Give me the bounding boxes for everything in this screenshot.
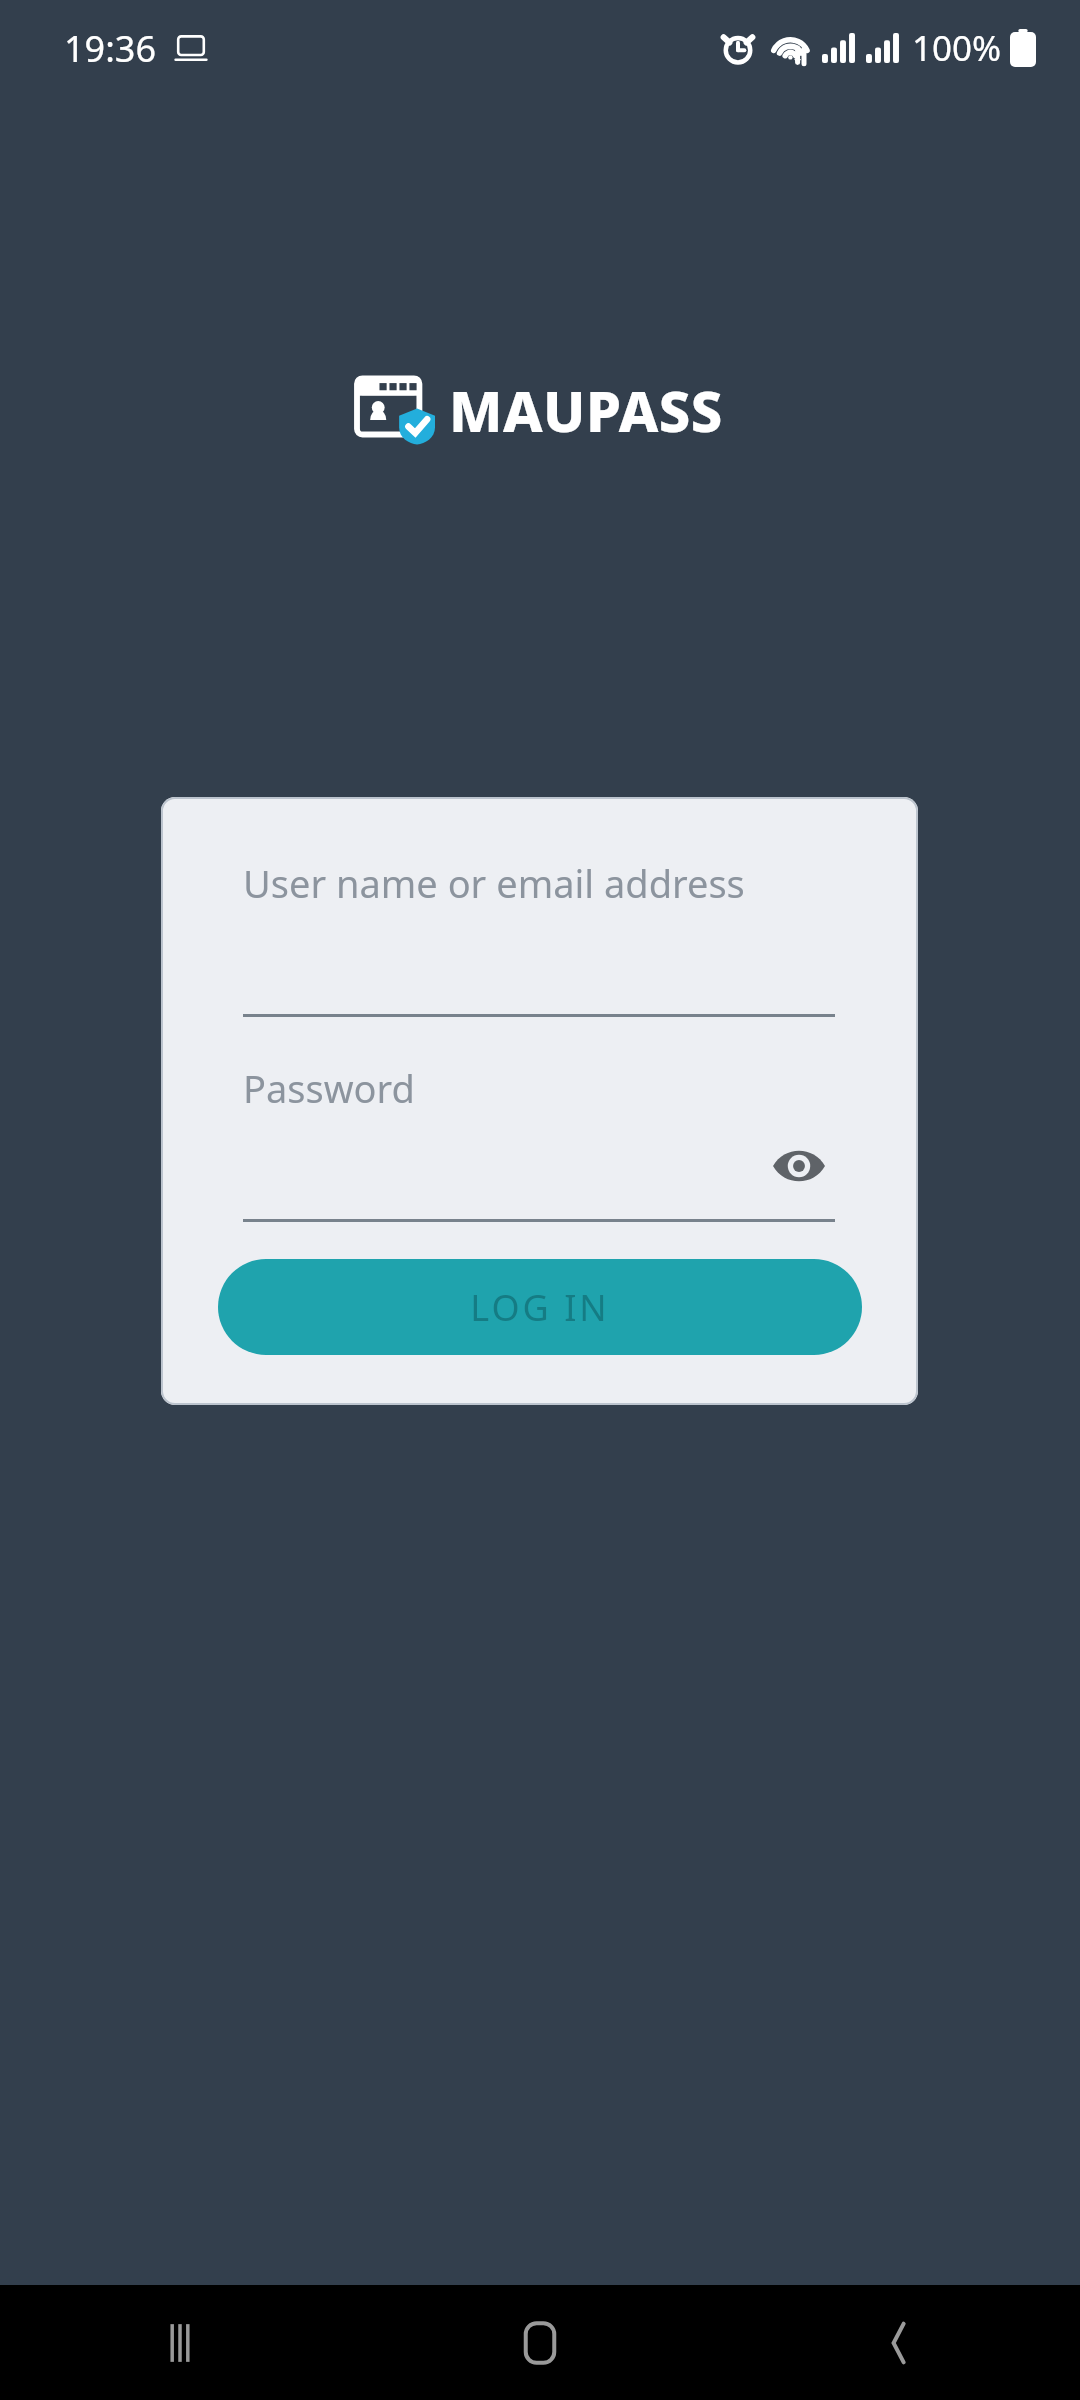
button[interactable]: Back xyxy=(720,2285,1080,2400)
staticText: User name or email address xyxy=(243,857,745,909)
button[interactable]: LOG IN xyxy=(218,1259,862,1355)
button[interactable]: Show password xyxy=(763,1138,835,1194)
staticText: LOG IN xyxy=(470,1283,610,1332)
button[interactable]: Password xyxy=(243,1050,835,1222)
staticText: 100% xyxy=(912,24,1002,72)
staticText: MAUPASS xyxy=(449,372,723,448)
button[interactable]: Recent apps xyxy=(0,2285,360,2400)
button[interactable]: Home xyxy=(360,2285,720,2400)
button[interactable]: User name or email address xyxy=(243,845,835,1017)
staticText: Password xyxy=(243,1062,415,1114)
staticText: 19:36 xyxy=(64,24,157,73)
